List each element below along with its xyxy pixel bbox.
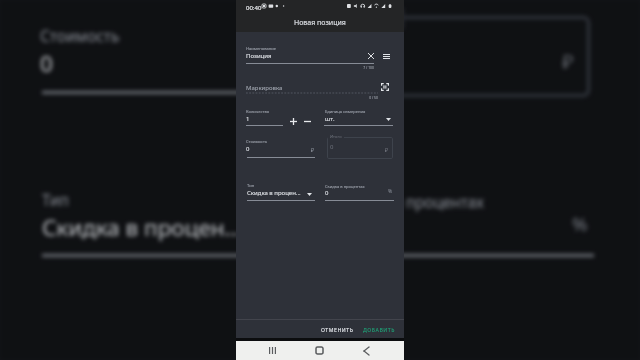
button[interactable]: Clear	[365, 50, 377, 62]
button[interactable]: Increase quantity	[287, 115, 299, 127]
staticText: ₽	[311, 146, 315, 153]
staticText: 0	[246, 145, 250, 153]
staticText: Скидка в процентах	[325, 184, 365, 190]
button[interactable]: Recent apps	[262, 341, 282, 360]
staticText: Маркировка	[246, 84, 283, 92]
button[interactable]: Decrease quantity	[301, 115, 313, 127]
staticText: %	[572, 211, 588, 236]
staticText: Позиция	[246, 52, 272, 60]
button[interactable]: Scan barcode	[379, 81, 391, 93]
staticText: 7 / 100	[344, 65, 374, 70]
button[interactable]: Back	[356, 341, 376, 360]
staticText: Стоимость	[246, 139, 268, 145]
staticText: 00:40	[246, 4, 262, 12]
button[interactable]: Select discount type	[303, 188, 315, 200]
staticText: 0	[40, 48, 53, 79]
staticText: Стоимость	[40, 26, 120, 47]
staticText: Единица измерения	[325, 109, 366, 115]
staticText: Скидка в процентах	[336, 192, 484, 213]
button[interactable]: ОТМЕНИТЬ	[318, 322, 357, 337]
staticText: Тип	[42, 190, 69, 211]
staticText: %	[388, 188, 393, 195]
staticText: Тип	[247, 183, 255, 189]
staticText: ₽	[562, 47, 574, 75]
button[interactable]: Home	[309, 341, 329, 360]
staticText: 0	[330, 143, 334, 151]
staticText: шт.	[325, 115, 335, 123]
button[interactable]: ДОБАВИТЬ	[360, 322, 398, 337]
staticText: 1	[246, 115, 250, 123]
staticText: ОТМЕНИТЬ	[321, 326, 354, 333]
staticText: 0	[325, 189, 329, 197]
staticText: ДОБАВИТЬ	[363, 326, 395, 333]
staticText: 0 / 50	[348, 95, 378, 100]
button[interactable]: Select unit	[382, 113, 394, 125]
staticText: Наименование	[246, 46, 277, 52]
staticText: Скидка в процен...	[42, 212, 243, 243]
staticText: Количество	[246, 109, 270, 115]
staticText: Новая позиция	[294, 18, 346, 28]
staticText: Итого	[330, 134, 342, 140]
staticText: 0	[354, 38, 367, 69]
button[interactable]: Choose from list	[380, 51, 392, 63]
staticText: ₽	[385, 146, 389, 153]
staticText: ₽	[285, 47, 297, 75]
staticText: Скидка в процен...	[247, 189, 301, 197]
